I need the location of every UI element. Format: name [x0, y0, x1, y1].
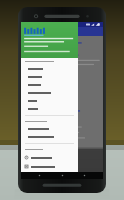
button[interactable] — [21, 125, 78, 133]
button[interactable] — [21, 73, 78, 81]
button[interactable] — [21, 81, 78, 89]
button[interactable] — [21, 65, 78, 73]
button[interactable] — [21, 133, 78, 141]
button[interactable]: Back — [35, 172, 44, 179]
button[interactable] — [21, 105, 78, 113]
button[interactable]: Recents — [80, 172, 89, 179]
other: Menu icon — [24, 155, 29, 160]
button[interactable] — [21, 89, 78, 97]
other: Menu icon — [24, 164, 29, 169]
button[interactable] — [21, 22, 78, 58]
button[interactable]: Home — [58, 172, 67, 179]
button[interactable]: Menu icon — [21, 162, 78, 171]
button[interactable]: Menu icon — [21, 153, 78, 162]
button[interactable] — [21, 97, 78, 105]
